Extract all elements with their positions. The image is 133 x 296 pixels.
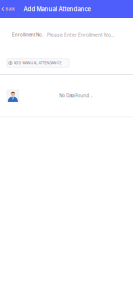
staticText: No Data Found ...	[59, 93, 93, 98]
staticText: Enrollment No.	[12, 32, 43, 38]
staticText: Back	[5, 7, 14, 11]
button[interactable]: Back	[0, 0, 23, 18]
staticText: ADD MANUAL ATTENDANCE	[14, 61, 62, 65]
button[interactable]: ADD MANUAL ATTENDANCE	[7, 59, 69, 67]
staticText: Please Enter Enrollment No...	[47, 32, 114, 38]
staticText: Add Manual Attendance	[23, 5, 90, 13]
